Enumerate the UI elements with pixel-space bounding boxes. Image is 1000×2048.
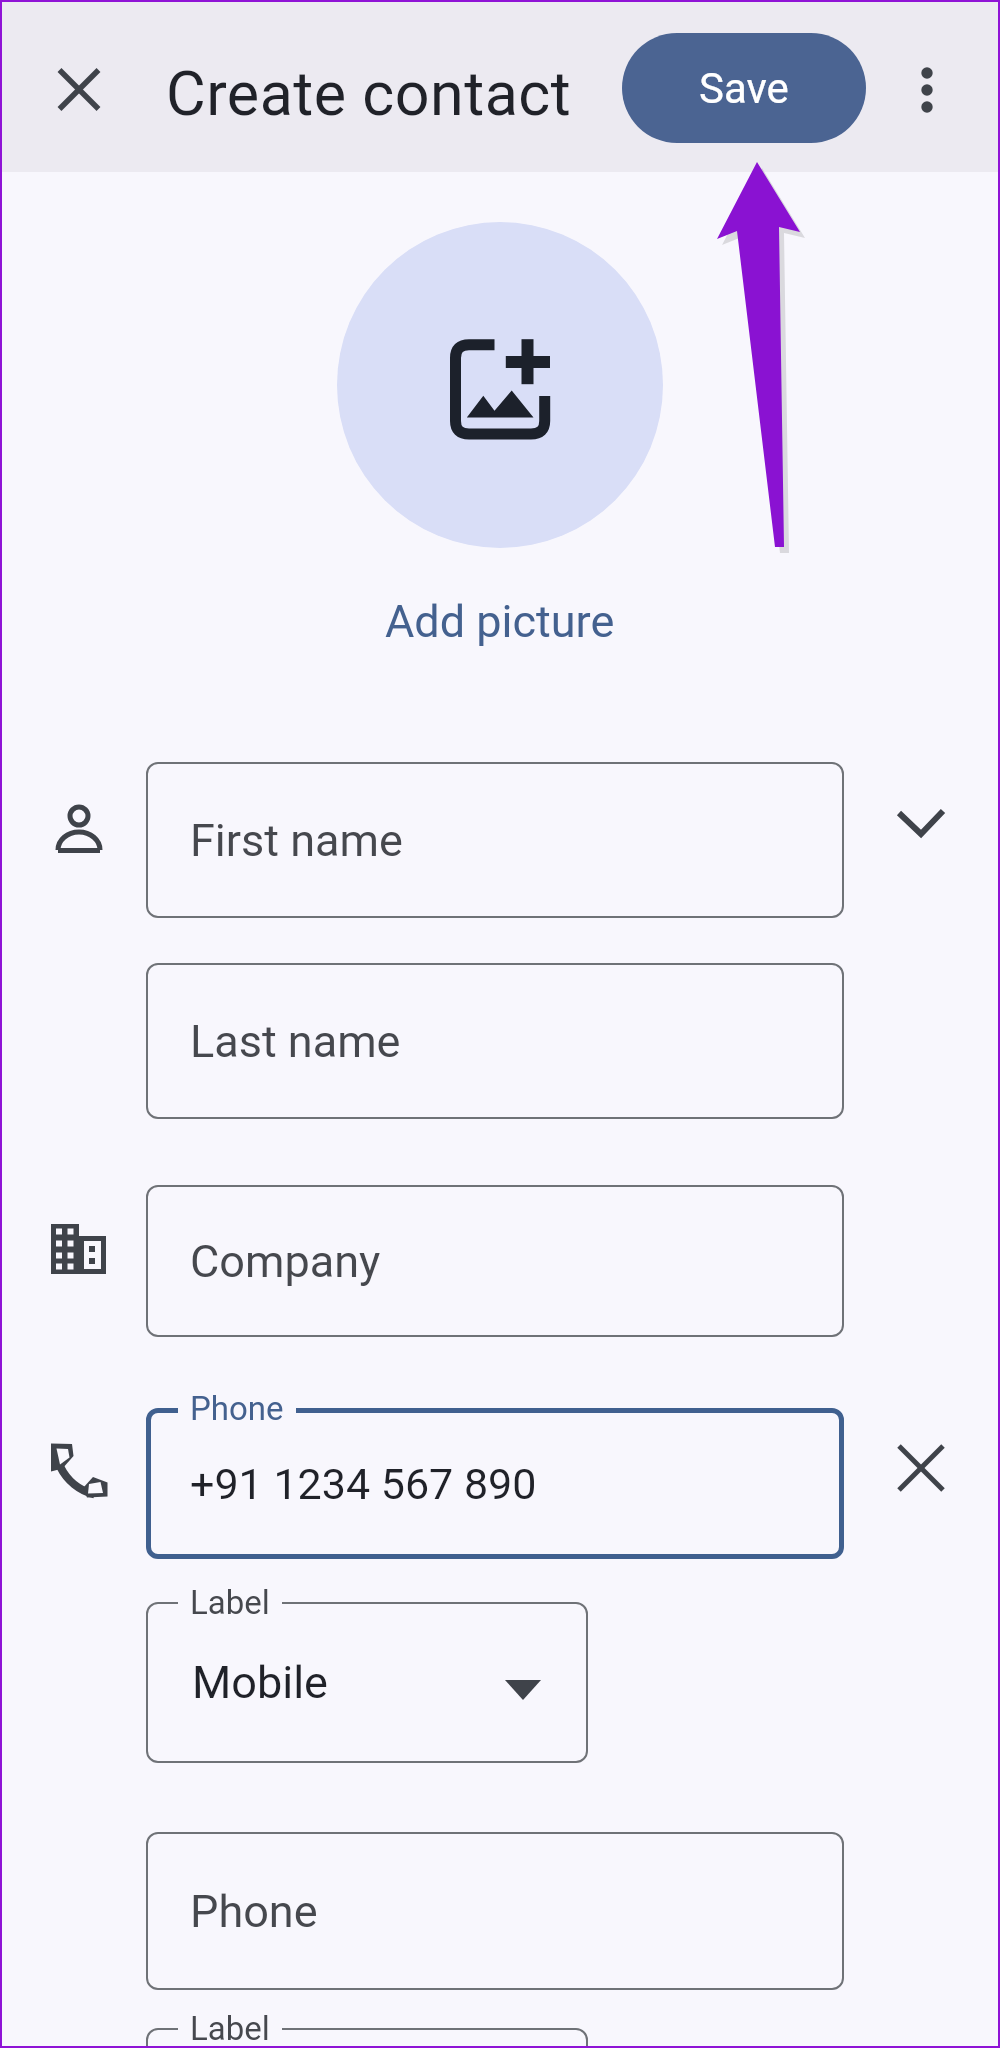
- staticText: +91 1234 567 890: [190, 1459, 537, 1509]
- staticText: Mobile: [192, 1656, 328, 1709]
- button[interactable]: Company: [146, 1185, 844, 1337]
- button[interactable]: First name: [146, 762, 844, 918]
- staticText: Label: [190, 2009, 270, 2048]
- button[interactable]: [337, 222, 663, 548]
- button[interactable]: Last name: [146, 963, 844, 1119]
- button[interactable]: Save: [622, 33, 866, 143]
- button[interactable]: Mobile: [146, 1602, 588, 1763]
- button[interactable]: Phone: [146, 1832, 844, 1990]
- button[interactable]: +91 1234 567 890: [146, 1408, 844, 1559]
- staticText: Save: [699, 64, 789, 113]
- staticText: Create contact: [166, 58, 572, 129]
- button[interactable]: Add picture: [350, 585, 650, 657]
- button[interactable]: [46, 56, 114, 124]
- staticText: Label: [190, 1583, 270, 1622]
- staticText: Add picture: [385, 595, 615, 648]
- button[interactable]: [896, 56, 958, 124]
- staticText: First name: [190, 814, 403, 867]
- staticText: Last name: [190, 1015, 401, 1068]
- staticText: Phone: [190, 1885, 318, 1938]
- staticText: Company: [190, 1235, 381, 1288]
- staticText: Phone: [190, 1389, 284, 1428]
